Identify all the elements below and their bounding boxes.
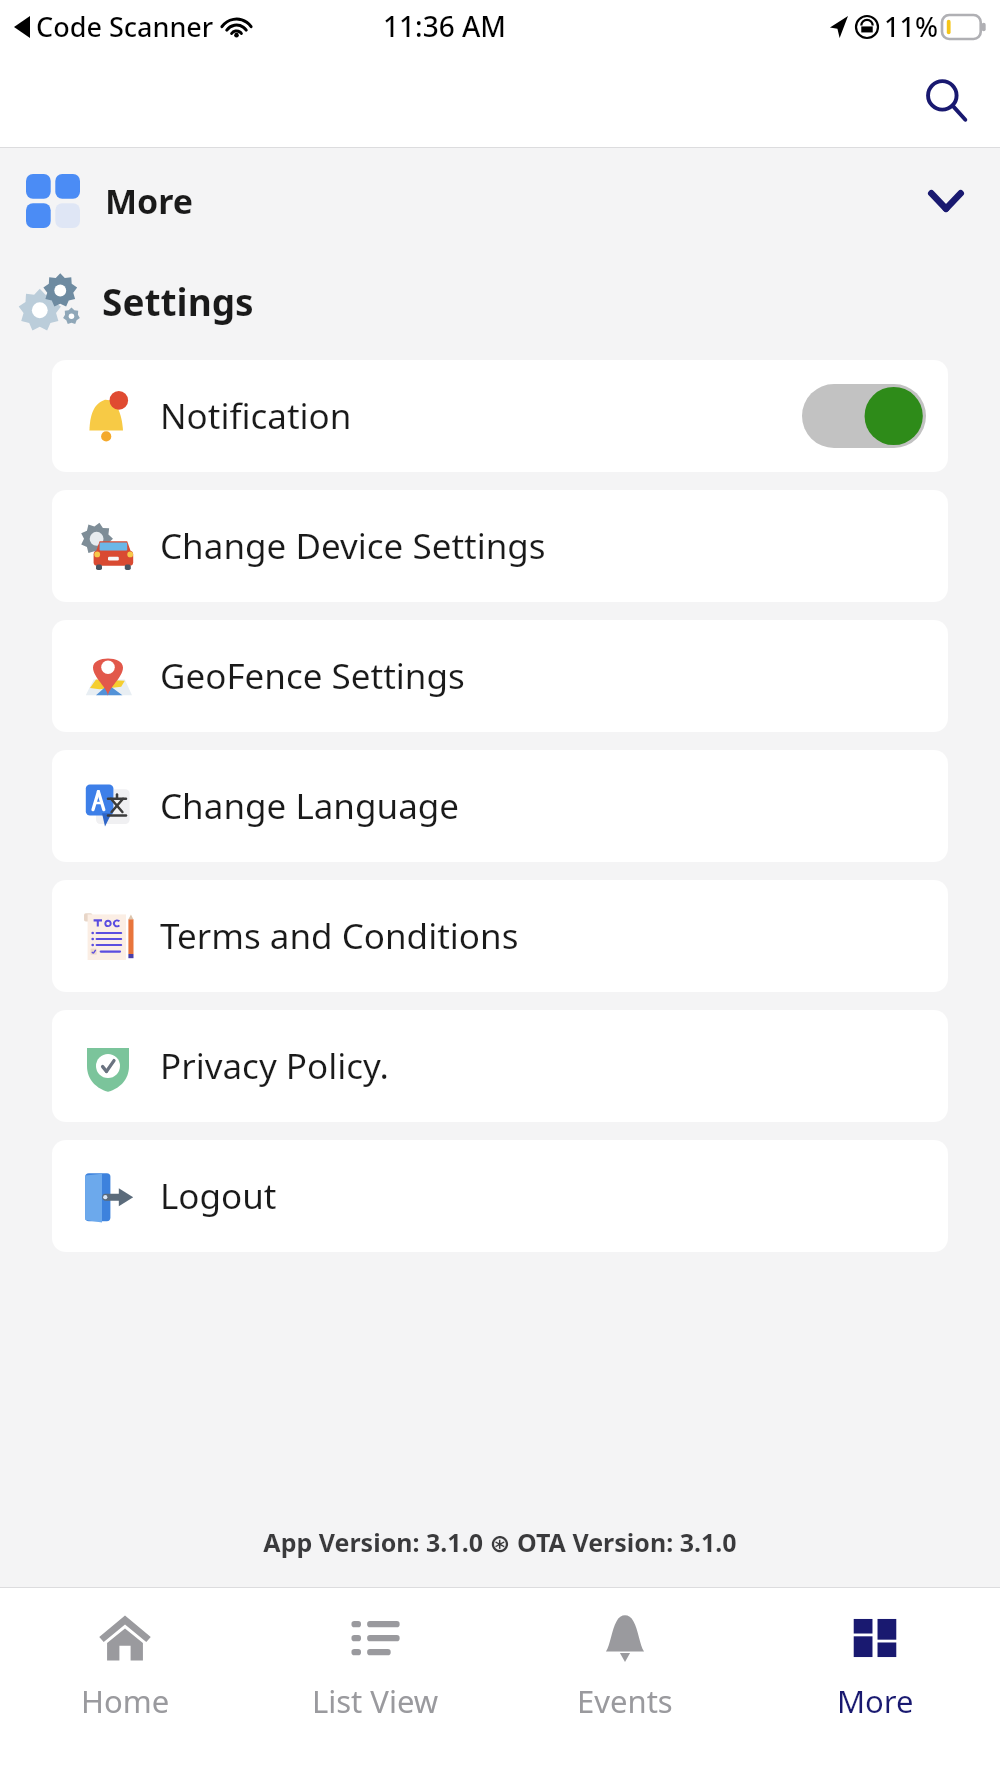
staticText: Terms and Conditions [160,912,519,960]
staticText: Notification [160,392,352,440]
button[interactable]: Expand [918,173,974,229]
staticText: App Version: 3.1.0 ⊛ OTA Version: 3.1.0 [0,1525,1000,1559]
staticText: Privacy Policy. [160,1042,389,1090]
staticText: Settings [102,276,254,326]
staticText: Code Scanner [36,8,214,45]
button[interactable]: More [0,148,1000,253]
staticText: GeoFence Settings [160,652,465,700]
button[interactable]: Notification [52,360,948,472]
staticText: Events [577,1680,673,1722]
staticText: Change Language [160,782,460,830]
button[interactable]: Search [914,68,978,132]
staticText: Logout [160,1172,277,1220]
button[interactable]: Notification toggle [802,384,926,448]
button[interactable]: Terms and Conditions [52,880,948,992]
button[interactable]: GeoFence Settings [52,620,948,732]
button[interactable]: Change Language [52,750,948,862]
staticText: Home [81,1680,170,1722]
staticText: Change Device Settings [160,522,546,570]
button[interactable]: Change Device Settings [52,490,948,602]
button[interactable]: More [750,1588,1000,1778]
staticText: 11% [884,8,938,45]
button[interactable]: Logout [52,1140,948,1252]
button[interactable]: Home [0,1588,250,1778]
staticText: More [837,1680,914,1722]
button[interactable]: Events [500,1588,750,1778]
button[interactable]: List View [250,1588,500,1778]
button[interactable]: Privacy Policy. [52,1010,948,1122]
staticText: List View [312,1680,439,1722]
staticText: 11:36 AM [383,7,507,45]
staticText: More [105,178,194,224]
